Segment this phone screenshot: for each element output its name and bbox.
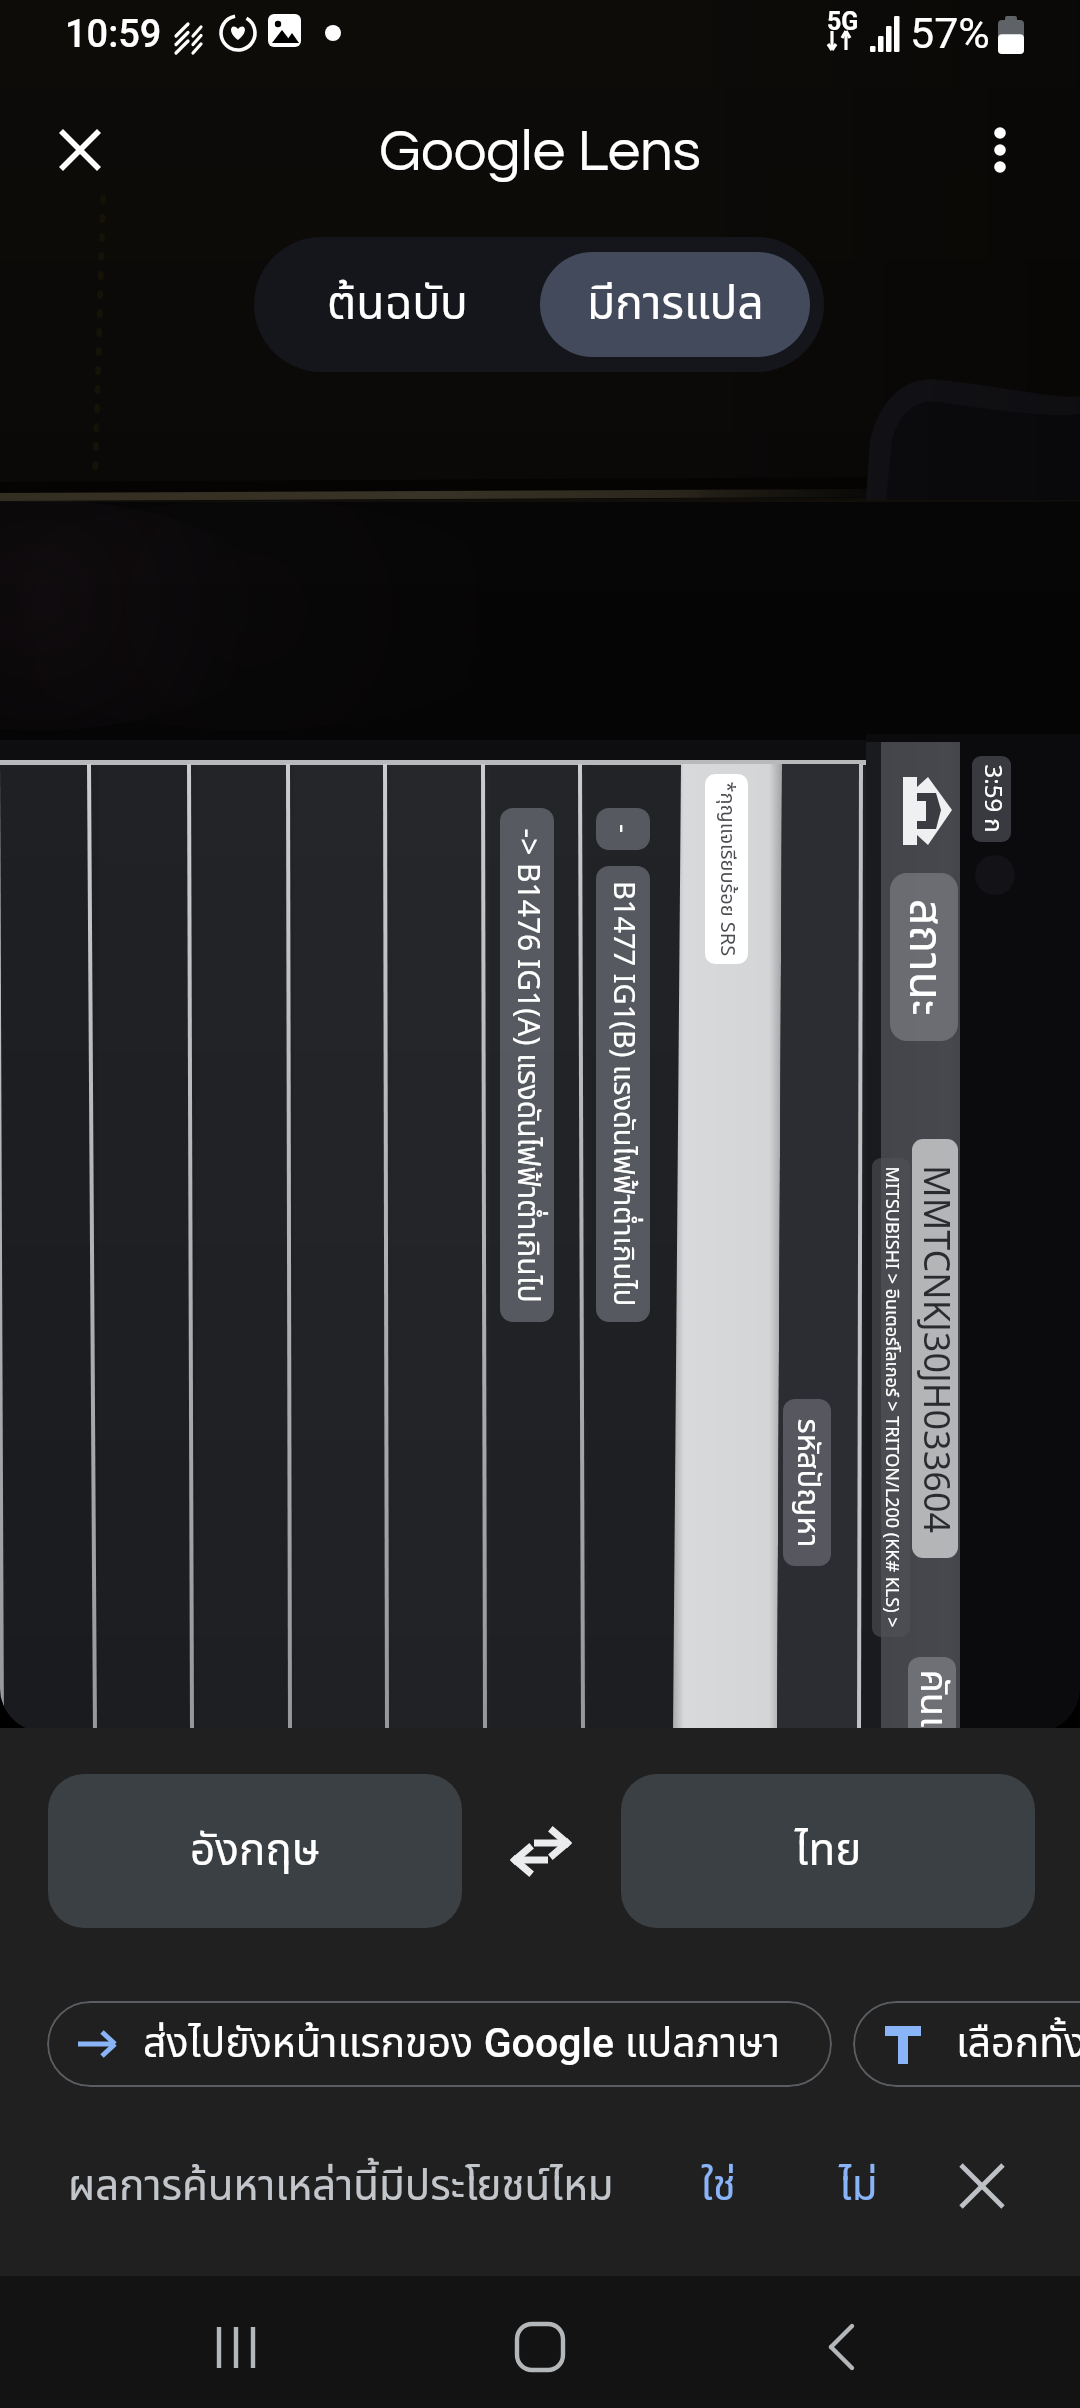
staticText: Google Lens <box>379 122 701 182</box>
button[interactable]: ไทย <box>621 1774 1035 1928</box>
button[interactable]: เลือกทั้งหมด <box>853 2001 1080 2087</box>
button[interactable]: ไม่ <box>820 2143 896 2229</box>
staticText: มีการแปล <box>587 270 764 340</box>
staticText: ต้นฉบับ <box>327 270 468 340</box>
button[interactable]: Swap languages <box>497 1808 585 1896</box>
staticText: *กุญแจเรียบร้อย SRS <box>711 781 741 956</box>
button[interactable]: Dismiss <box>946 2150 1018 2222</box>
staticText: ไม่ <box>839 2155 878 2218</box>
button[interactable]: Recents <box>182 2292 292 2402</box>
staticText: MITSUBISHI > อินเตอร์โลเกอร์ > TRITON/L2… <box>877 1166 904 1628</box>
button[interactable]: ใช่ <box>678 2143 758 2229</box>
staticText: รหัสปัญหา <box>783 1418 830 1547</box>
staticText: สถานะ <box>890 899 958 1016</box>
button[interactable]: Close <box>36 106 124 194</box>
button[interactable]: Back <box>788 2292 898 2402</box>
staticText: 10:59 <box>65 12 162 57</box>
button[interactable]: Home <box>485 2292 595 2402</box>
button[interactable]: มีการแปล <box>540 252 810 357</box>
button[interactable]: More options <box>956 106 1044 194</box>
staticText: ผลการค้นหาเหล่านี้มีประโยชน์ไหม <box>68 2155 614 2218</box>
button[interactable]: อังกฤษ <box>48 1774 462 1928</box>
staticText: อังกฤษ <box>190 1818 320 1884</box>
staticText: ส่งไปยังหน้าแรกของ Google แปลภาษา <box>143 2013 780 2075</box>
staticText: -> B1476 IG1(A) แรงดันไฟฟ้าต่ำเกินไป <box>504 828 549 1303</box>
staticText: 3:59 ก <box>973 764 1009 833</box>
button[interactable]: ต้นฉบับ <box>254 237 540 372</box>
staticText: B1477 IG1(B) แรงดันไฟฟ้าต่ำเกินไป <box>601 881 645 1307</box>
staticText: ใช่ <box>701 2155 736 2218</box>
staticText: - <box>602 824 644 834</box>
staticText: MMTCNKJ30JH033604 <box>912 1165 958 1534</box>
staticText: ไทย <box>795 1818 862 1884</box>
staticText: 57% <box>910 8 990 58</box>
button[interactable]: ส่งไปยังหน้าแรกของ Google แปลภาษา <box>47 2001 832 2087</box>
staticText: 5G <box>827 7 859 36</box>
staticText: คันเร่ง <box>908 1669 956 1732</box>
staticText: เลือกทั้งหมด <box>956 2013 1080 2075</box>
